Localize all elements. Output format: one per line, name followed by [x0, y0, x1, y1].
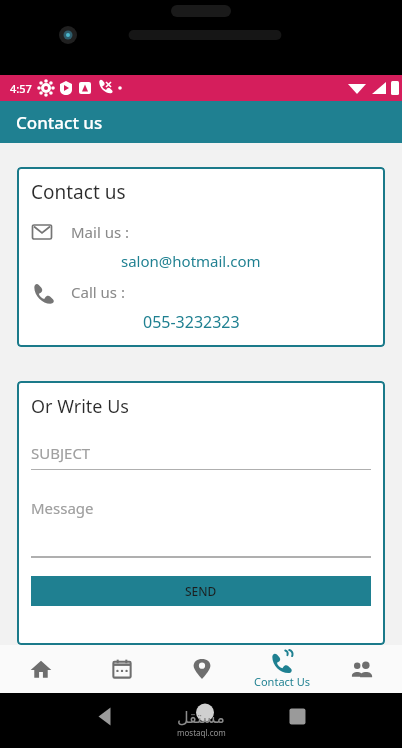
staticText: Or Write Us — [31, 394, 129, 419]
button[interactable]: Location — [162, 645, 242, 693]
staticText: mostaql.com — [177, 727, 226, 738]
button[interactable]: Home — [0, 645, 81, 693]
staticText: salon@hotmail.com — [121, 251, 261, 271]
button[interactable]: Calendar — [81, 645, 162, 693]
staticText: Contact Us — [254, 674, 310, 689]
staticText: Message — [31, 498, 94, 518]
staticText: Contact us — [31, 179, 126, 205]
staticText: Contact us — [16, 111, 103, 134]
staticText: 055-3232323 — [143, 311, 240, 333]
staticText: Call us : — [71, 282, 125, 302]
staticText: 4:57 — [10, 81, 32, 96]
button[interactable]: SEND — [31, 576, 371, 606]
staticText: SUBJECT — [31, 443, 91, 463]
button[interactable]: SUBJECT — [31, 443, 371, 470]
button[interactable]: Contact Us — [242, 645, 322, 693]
staticText: SEND — [185, 583, 217, 599]
staticText: مستقل — [177, 708, 225, 727]
button[interactable]: People — [322, 645, 402, 693]
button[interactable]: Message — [31, 498, 371, 558]
staticText: Mail us : — [71, 222, 130, 242]
